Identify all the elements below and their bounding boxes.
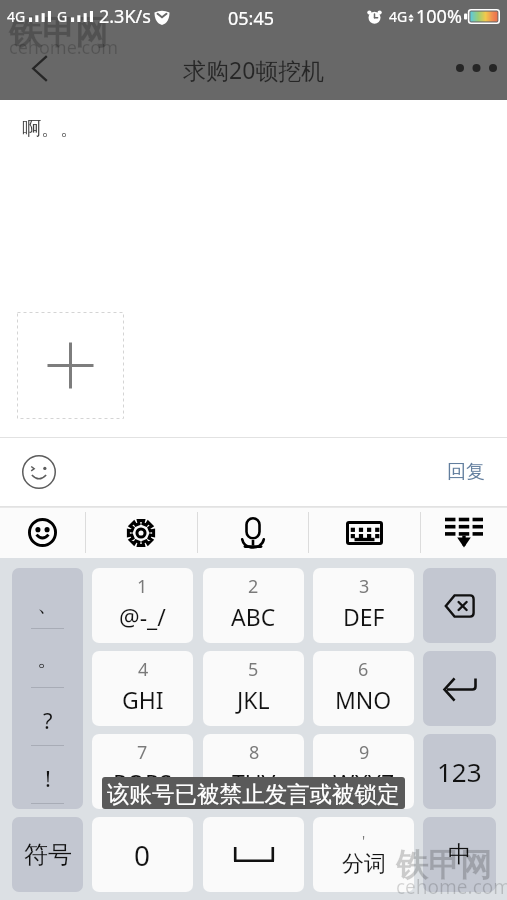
staticText: 5: [248, 657, 259, 682]
staticText: 该账号已被禁止发言或被锁定: [107, 780, 400, 808]
staticText: cehome.com: [396, 874, 507, 900]
staticText: !: [45, 763, 51, 793]
button[interactable]: 3 DEF: [313, 568, 414, 643]
staticText: WXYZ: [333, 767, 395, 798]
staticText: 3: [359, 574, 370, 599]
button[interactable]: Symbols: [12, 817, 83, 892]
staticText: cehome.com: [9, 35, 118, 60]
staticText: 7: [137, 740, 148, 765]
button[interactable]: Emoji: [15, 448, 63, 496]
button[interactable]: Back: [12, 40, 68, 96]
staticText: 符号: [24, 840, 72, 870]
staticText: 05:45: [228, 6, 275, 31]
button[interactable]: Enter: [423, 651, 496, 726]
staticText: 1: [137, 574, 148, 599]
staticText: 123: [437, 754, 482, 789]
button[interactable]: Settings: [85, 507, 197, 558]
button[interactable]: Keyboard: [308, 507, 420, 558]
staticText: 啊。。: [22, 117, 79, 141]
staticText: 8: [249, 740, 260, 765]
button[interactable]: 7 PQRS: [92, 734, 193, 809]
staticText: ': [362, 831, 366, 850]
staticText: @-_/: [119, 601, 166, 632]
staticText: 100%: [416, 4, 462, 29]
staticText: 中: [448, 840, 471, 869]
staticText: 0: [134, 836, 151, 874]
button[interactable]: 123: [423, 734, 496, 809]
button[interactable]: Chinese input: [423, 817, 496, 892]
button[interactable]: Space: [203, 817, 304, 892]
staticText: 求购20顿挖机: [183, 54, 325, 85]
staticText: G: [57, 7, 68, 26]
staticText: 铁甲网: [9, 12, 108, 54]
staticText: 4: [138, 657, 149, 682]
button[interactable]: 9 WXYZ: [313, 734, 414, 809]
button[interactable]: 分词: [313, 817, 414, 892]
staticText: JKL: [237, 684, 270, 715]
button[interactable]: 1 @-_/: [92, 568, 193, 643]
staticText: 回复: [447, 460, 485, 484]
staticText: ABC: [231, 601, 276, 632]
button[interactable]: Backspace: [423, 568, 496, 643]
staticText: 、: [37, 590, 59, 618]
button[interactable]: Hide keyboard: [420, 507, 507, 558]
button[interactable]: Emoji: [0, 507, 85, 558]
staticText: ?: [43, 705, 53, 735]
button[interactable]: 8 TUV: [203, 734, 304, 809]
button[interactable]: Punctuation: [12, 568, 83, 809]
staticText: 。: [37, 645, 59, 673]
button[interactable]: 2 ABC: [203, 568, 304, 643]
staticText: 6: [358, 657, 369, 682]
staticText: 2: [248, 574, 259, 599]
button[interactable]: 5 JKL: [203, 651, 304, 726]
button[interactable]: Add image: [17, 312, 124, 419]
button[interactable]: 4 GHI: [92, 651, 193, 726]
button[interactable]: More options: [448, 40, 504, 96]
staticText: 分词: [342, 850, 386, 878]
staticText: 2.3K/s: [99, 4, 151, 29]
staticText: 铁甲网: [396, 845, 492, 885]
staticText: MNO: [335, 684, 392, 715]
staticText: GHI: [122, 684, 164, 715]
staticText: PQRS: [113, 767, 172, 798]
button[interactable]: 回复: [438, 454, 494, 490]
staticText: 9: [359, 740, 370, 765]
staticText: 4G: [7, 7, 26, 26]
staticText: 4G: [389, 7, 408, 26]
button[interactable]: Voice input: [197, 507, 308, 558]
button[interactable]: 6 MNO: [313, 651, 414, 726]
button[interactable]: 0: [92, 817, 193, 892]
staticText: TUV: [232, 767, 276, 798]
staticText: DEF: [343, 601, 385, 632]
